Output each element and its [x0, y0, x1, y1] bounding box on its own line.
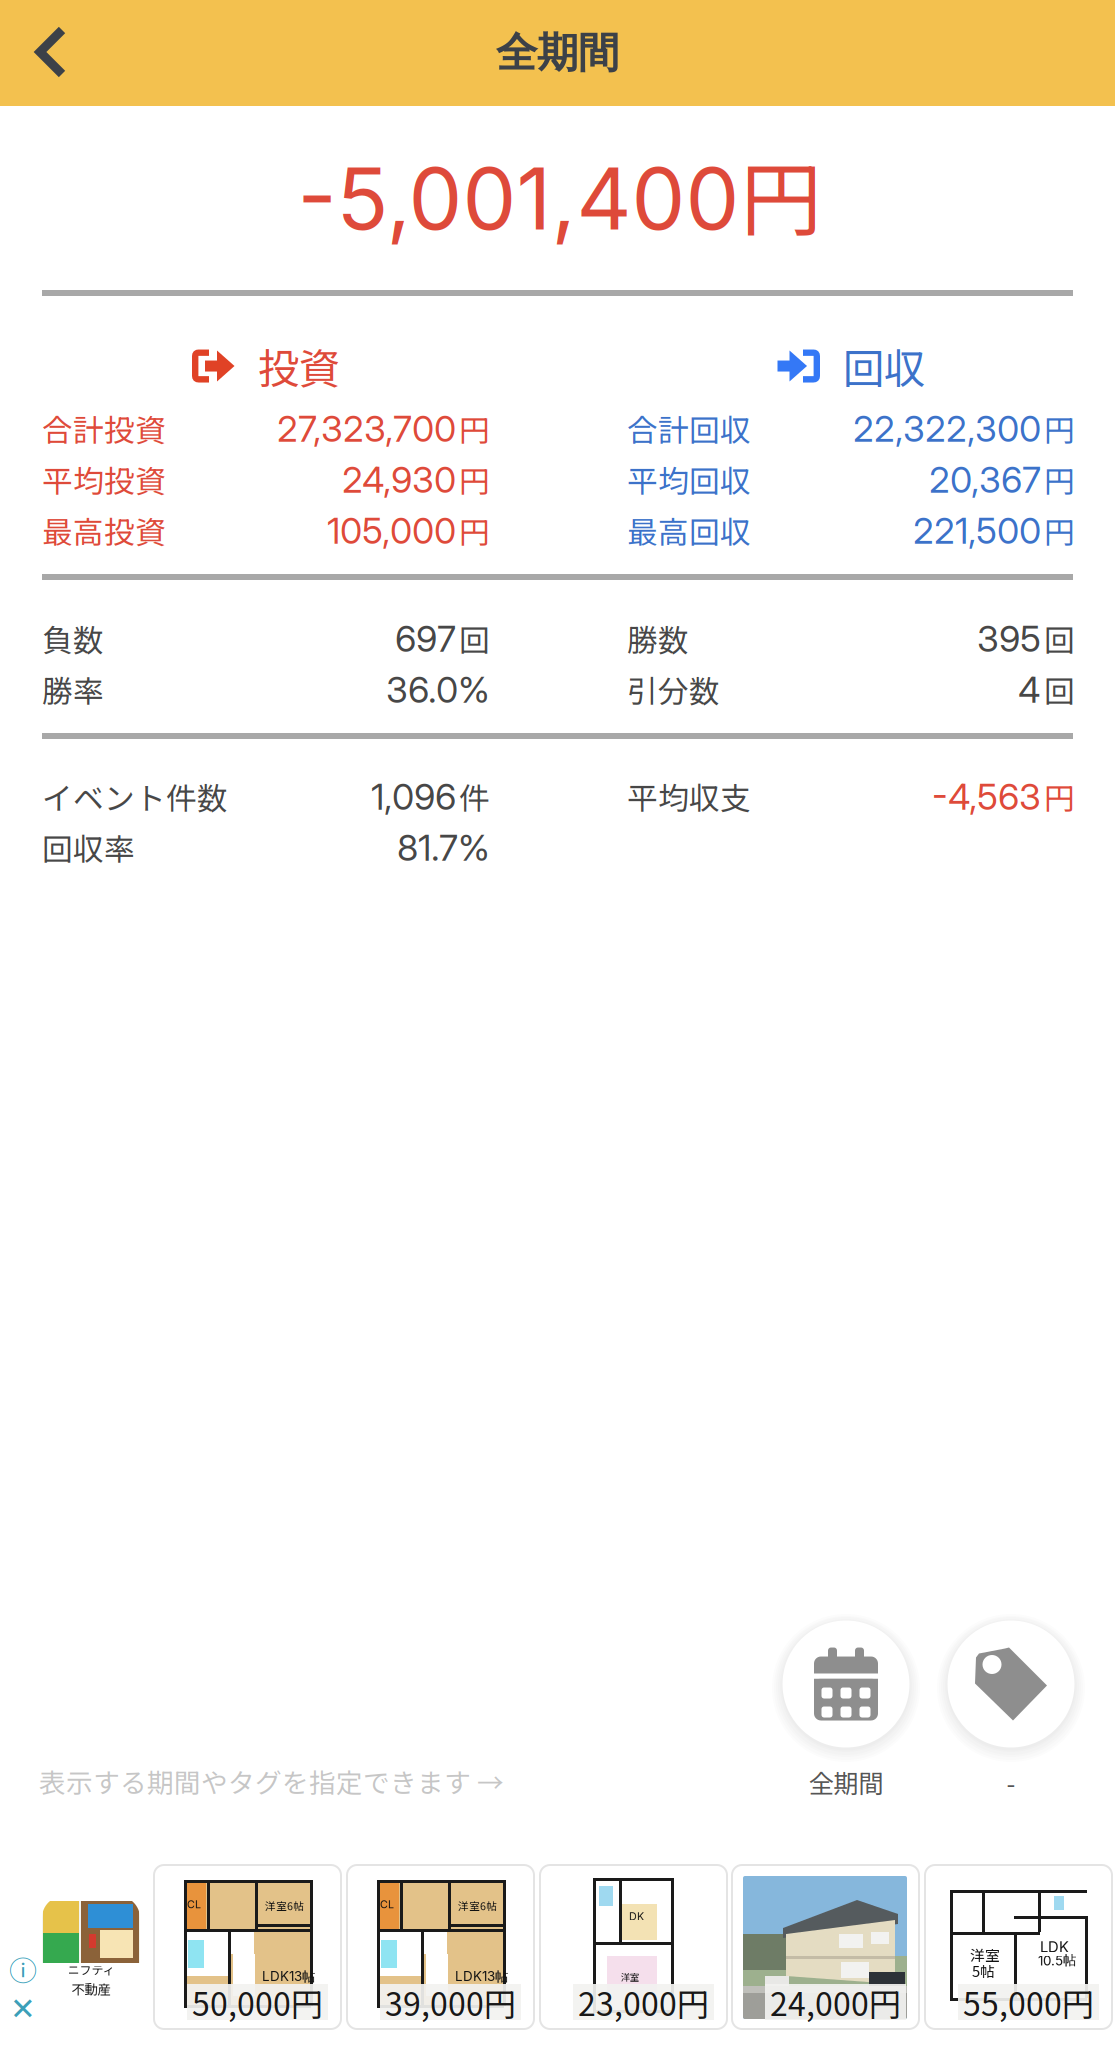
- staticText: CL: [187, 1898, 201, 1911]
- staticText: 回収率: [42, 825, 135, 870]
- staticText: 件: [459, 774, 490, 819]
- staticText: 22,322,300: [853, 407, 1041, 451]
- staticText: 回: [1044, 667, 1075, 712]
- staticText: 20,367: [929, 458, 1041, 502]
- button[interactable]: 55,000円: [925, 1865, 1112, 2029]
- staticText: 5帖: [972, 1960, 995, 1981]
- staticText: 引分数: [627, 667, 720, 712]
- staticText: 最高投資: [42, 508, 166, 553]
- staticText: イベント件数: [42, 774, 228, 819]
- staticText: 全期間: [496, 27, 619, 79]
- staticText: ✕: [10, 1991, 36, 2027]
- staticText: 39,000円: [385, 1979, 516, 2025]
- staticText: 10.5帖: [1038, 1952, 1076, 1969]
- staticText: 回収: [843, 336, 925, 396]
- staticText: CL: [380, 1898, 394, 1911]
- staticText: 洋室6帖: [458, 1898, 497, 1913]
- staticText: 円: [459, 406, 490, 451]
- button[interactable]: 24,000円: [732, 1865, 919, 2029]
- staticText: 23,000円: [578, 1979, 709, 2025]
- staticText: 平均収支: [627, 774, 751, 819]
- staticText: 平均投資: [42, 457, 166, 502]
- staticText: LDK13帖: [262, 1968, 315, 1985]
- staticText: 円: [1044, 774, 1075, 819]
- staticText: 平均回収: [627, 457, 751, 502]
- button[interactable]: Select period: [771, 1609, 921, 1799]
- staticText: ⓘ: [9, 1949, 37, 1989]
- button[interactable]: Ad info: [8, 1954, 38, 1984]
- button[interactable]: 23,000円: [540, 1865, 727, 2029]
- staticText: 投資: [258, 336, 340, 396]
- staticText: 円: [459, 508, 490, 553]
- staticText: 全期間: [808, 1764, 883, 1800]
- staticText: -4,563: [932, 775, 1041, 819]
- staticText: 最高回収: [627, 508, 751, 553]
- staticText: 回: [1044, 616, 1075, 661]
- staticText: 395: [977, 617, 1041, 661]
- staticText: 勝率: [42, 667, 104, 712]
- staticText: -: [1006, 1764, 1015, 1800]
- button[interactable]: 50,000円: [154, 1865, 341, 2029]
- staticText: 24,000円: [770, 1979, 901, 2025]
- staticText: 合計投資: [42, 406, 166, 451]
- staticText: 洋室6帖: [265, 1898, 304, 1913]
- staticText: 1,096: [371, 775, 456, 819]
- staticText: LDK: [1040, 1938, 1069, 1956]
- staticText: 4: [1018, 668, 1041, 712]
- staticText: 負数: [42, 616, 104, 661]
- staticText: 回: [459, 616, 490, 661]
- staticText: 表示する期間やタグを指定できます →: [39, 1762, 504, 1800]
- staticText: 不動産: [71, 1979, 110, 1998]
- staticText: -5,001,400: [297, 147, 739, 250]
- staticText: 81.7: [397, 826, 458, 870]
- staticText: 27,323,700: [277, 407, 456, 451]
- button[interactable]: ニフティ不動産: [42, 1896, 140, 1996]
- staticText: 円: [459, 457, 490, 502]
- staticText: 697: [395, 617, 456, 661]
- staticText: 55,000円: [963, 1979, 1094, 2025]
- staticText: 円: [1044, 508, 1075, 553]
- staticText: 円: [1044, 457, 1075, 502]
- staticText: ニフティ: [67, 1961, 114, 1978]
- staticText: 合計回収: [627, 406, 751, 451]
- staticText: %: [458, 668, 490, 712]
- staticText: 36.0: [386, 668, 458, 712]
- button[interactable]: Select tag: [936, 1609, 1086, 1799]
- staticText: 24,930: [342, 458, 456, 502]
- staticText: 105,000: [327, 509, 456, 553]
- staticText: 50,000円: [192, 1979, 323, 2025]
- button[interactable]: Back: [0, 0, 112, 106]
- staticText: LDK13帖: [455, 1968, 508, 1985]
- staticText: 洋室: [970, 1944, 1000, 1965]
- staticText: 洋室: [621, 1970, 639, 1983]
- staticText: 221,500: [913, 509, 1041, 553]
- staticText: %: [458, 826, 490, 870]
- staticText: DK: [629, 1910, 644, 1923]
- staticText: 勝数: [627, 616, 689, 661]
- button[interactable]: 39,000円: [347, 1865, 534, 2029]
- staticText: 円: [1044, 406, 1075, 451]
- button[interactable]: Close ad: [8, 1994, 38, 2024]
- staticText: 円: [740, 135, 821, 253]
